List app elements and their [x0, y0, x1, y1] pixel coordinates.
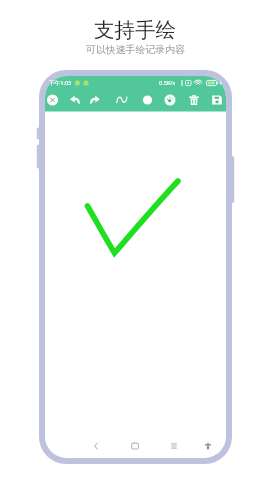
staticText: 下午1:03 — [49, 79, 72, 87]
button[interactable]: Pen style — [112, 91, 132, 111]
button[interactable]: Brush size — [138, 91, 158, 111]
staticText: 支持手绘 — [94, 17, 176, 43]
button[interactable]: Home — [122, 434, 148, 460]
button[interactable]: Close — [43, 91, 63, 111]
button[interactable]: Save — [207, 91, 227, 111]
button[interactable]: Back — [83, 434, 109, 460]
button[interactable]: Recent apps — [161, 434, 187, 460]
button[interactable]: Undo — [65, 91, 85, 111]
button[interactable]: Hide keyboard — [195, 434, 221, 460]
button[interactable]: Redo — [85, 91, 105, 111]
staticText: 0.5K/s — [159, 79, 176, 87]
staticText: 可以快速手绘记录内容 — [86, 43, 185, 55]
button[interactable]: Delete — [184, 91, 204, 111]
button[interactable]: Color palette — [160, 91, 180, 111]
button[interactable]: Drawing canvas — [45, 112, 226, 432]
